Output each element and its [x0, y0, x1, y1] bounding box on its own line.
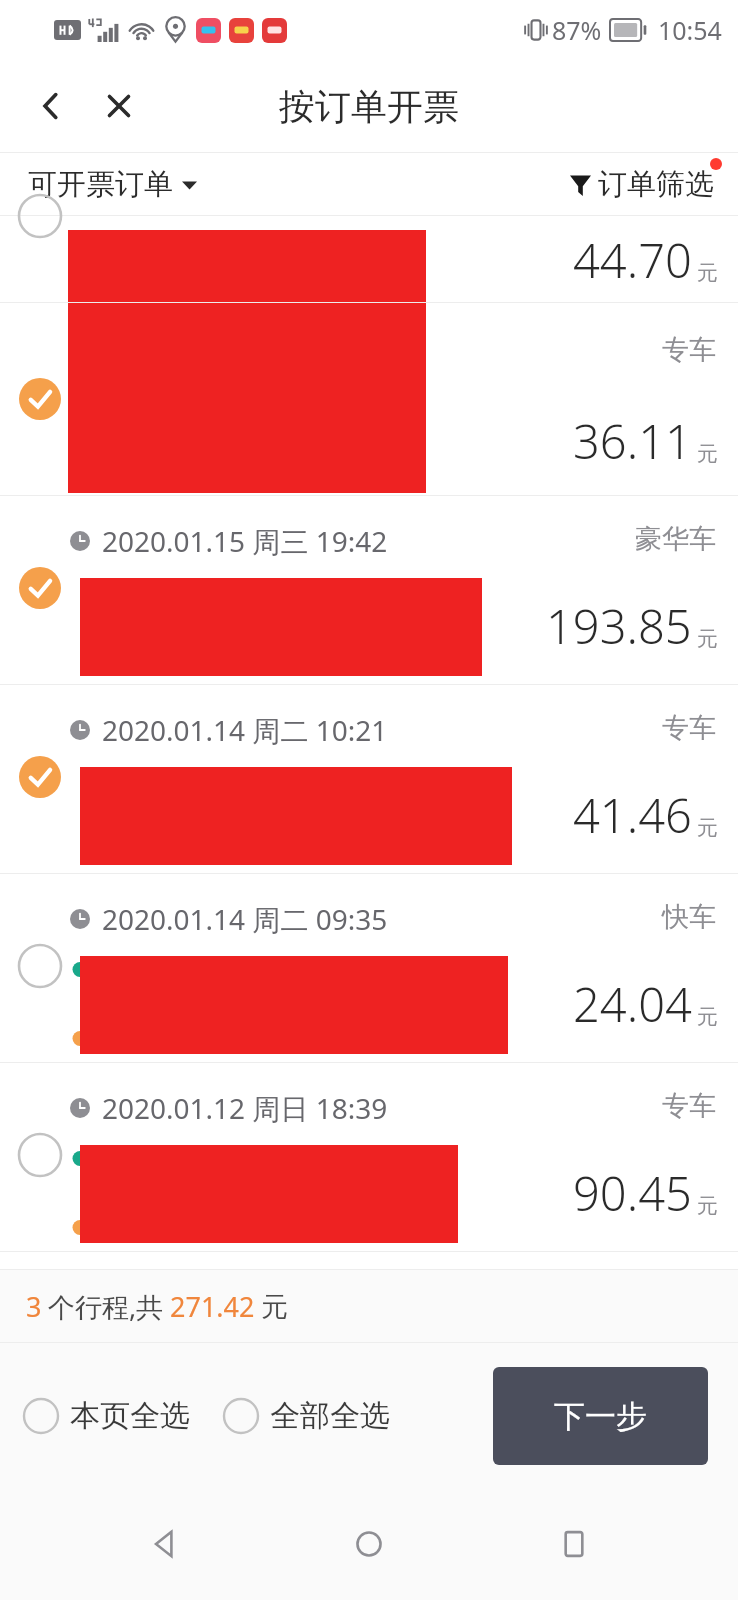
staticText: 下一步 — [554, 1397, 647, 1436]
staticText: 元 — [697, 1004, 718, 1030]
button[interactable]: 2020.01.14 周二 10:21 — [0, 685, 738, 873]
button[interactable]: 44.70 — [0, 216, 738, 302]
button[interactable]: 本页全选 — [14, 1387, 198, 1445]
button[interactable]: 2020.01.12 周日 18:39 — [0, 1063, 738, 1251]
staticText: 全部全选 — [270, 1397, 390, 1435]
button[interactable]: 订单筛选 — [566, 158, 718, 211]
button[interactable]: 可开票订单 — [24, 158, 201, 211]
staticText: 元 — [697, 441, 718, 467]
staticText: 36.11 — [573, 409, 692, 473]
staticText: 24.04 — [573, 972, 692, 1036]
staticText: 元 — [697, 626, 718, 652]
staticText: 元 — [697, 815, 718, 841]
staticText: 个行程,共 — [48, 1288, 164, 1325]
button[interactable]: 下一步 — [493, 1367, 708, 1465]
button[interactable]: Recents — [534, 1504, 614, 1584]
staticText: 41.46 — [573, 783, 692, 847]
staticText: 193.85 — [546, 594, 692, 658]
staticText: 90.45 — [573, 1161, 692, 1225]
staticText: 专车 — [662, 333, 716, 367]
button[interactable]: 专车 — [0, 303, 738, 495]
staticText: 快车 — [662, 900, 716, 934]
button[interactable]: Back — [125, 1504, 205, 1584]
staticText: 专车 — [662, 711, 716, 745]
staticText: 271.42 — [170, 1288, 255, 1325]
button[interactable]: Close — [88, 75, 150, 137]
staticText: 2020.01.15 周三 19:42 — [102, 522, 388, 560]
staticText: 豪华车 — [635, 522, 716, 556]
staticText: 44.70 — [573, 228, 692, 292]
staticText: 3 — [26, 1288, 42, 1325]
staticText: 10:54 — [658, 13, 722, 47]
staticText: 订单筛选 — [598, 166, 714, 203]
staticText: 元 — [697, 1193, 718, 1219]
staticText: 按订单开票 — [279, 84, 459, 129]
staticText: 可开票订单 — [28, 166, 173, 203]
button[interactable]: 2020.01.15 周三 19:42 — [0, 496, 738, 684]
button[interactable]: 2020.01.14 周二 09:35 — [0, 874, 738, 1062]
staticText: 87% — [552, 13, 602, 47]
button[interactable]: Home — [329, 1504, 409, 1584]
staticText: 元 — [261, 1290, 288, 1324]
staticText: 本页全选 — [70, 1397, 190, 1435]
button[interactable]: 全部全选 — [214, 1387, 398, 1445]
staticText: 专车 — [662, 1089, 716, 1123]
staticText: 2020.01.14 周二 09:35 — [102, 900, 388, 938]
staticText: 2020.01.12 周日 18:39 — [102, 1089, 388, 1127]
staticText: 元 — [697, 260, 718, 286]
staticText: 2020.01.14 周二 10:21 — [102, 711, 388, 749]
button[interactable]: Back — [20, 75, 82, 137]
